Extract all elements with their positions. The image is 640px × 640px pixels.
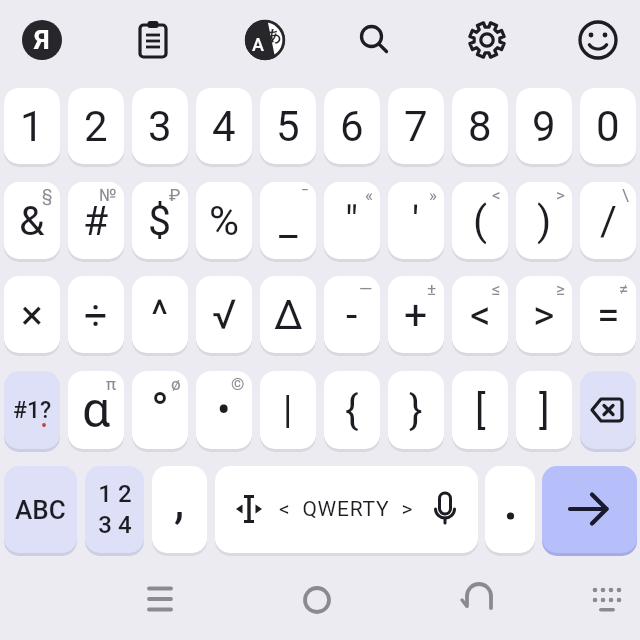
button[interactable] (542, 466, 637, 553)
button[interactable]: ] (516, 371, 572, 449)
button[interactable]: ' (388, 182, 444, 259)
staticText: ÷ (84, 291, 108, 339)
staticText: 6 (340, 102, 364, 151)
button[interactable]: 9 (516, 88, 572, 164)
button[interactable]: { (324, 371, 380, 449)
button[interactable] (125, 12, 181, 68)
staticText: A (252, 34, 264, 55)
staticText: ø (171, 374, 181, 394)
button[interactable]: ) (516, 182, 572, 259)
button[interactable]: A (237, 12, 293, 68)
button[interactable] (580, 371, 636, 449)
staticText: $ (148, 197, 172, 245)
button[interactable]: $ (132, 182, 188, 259)
staticText: Δ (274, 291, 303, 339)
staticText: [ (475, 387, 486, 434)
staticText: = (597, 291, 620, 339)
staticText: - (346, 291, 358, 339)
button[interactable]: 3 (132, 88, 188, 164)
button[interactable]: 1 (4, 88, 60, 164)
staticText: ' (412, 197, 420, 245)
button[interactable]: " (324, 182, 380, 259)
staticText: 8 (468, 102, 492, 151)
staticText: ≥ (556, 279, 565, 299)
staticText: — (359, 279, 373, 299)
staticText: ] (539, 387, 550, 434)
button[interactable]: } (388, 371, 444, 449)
staticText: < QWERTY > (279, 497, 414, 522)
button[interactable]: 1 2 3 4 (85, 466, 144, 553)
button[interactable]: Δ (260, 276, 316, 353)
staticText: > (556, 185, 565, 205)
staticText: < (492, 185, 501, 205)
staticText: ± (427, 279, 437, 299)
staticText: #1? (13, 397, 52, 424)
button[interactable]: ABC (4, 466, 77, 553)
button[interactable] (579, 572, 635, 628)
staticText: 7 (404, 102, 428, 151)
staticText: 5 (276, 102, 300, 151)
button[interactable] (289, 572, 345, 628)
staticText: > (533, 291, 555, 339)
button[interactable]: + (388, 276, 444, 353)
button[interactable]: < QWERTY > (215, 466, 478, 553)
button[interactable]: 4 (196, 88, 252, 164)
staticText: 1 (20, 102, 44, 151)
button[interactable] (459, 12, 515, 68)
staticText: ) (537, 197, 552, 245)
staticText: 4 (212, 102, 236, 151)
button[interactable]: ° (132, 371, 188, 449)
button[interactable]: _ (260, 182, 316, 259)
button[interactable]: # (68, 182, 124, 259)
button[interactable]: - (324, 276, 380, 353)
staticText: « (365, 185, 373, 205)
staticText: ^ (151, 291, 169, 339)
staticText: ₽ (169, 185, 181, 205)
button[interactable]: 5 (260, 88, 316, 164)
button[interactable]: × (4, 276, 60, 353)
button[interactable]: √ (196, 276, 252, 353)
button[interactable]: [ (452, 371, 508, 449)
button[interactable]: • (196, 371, 252, 449)
button[interactable]: 6 (324, 88, 380, 164)
button[interactable] (570, 12, 626, 68)
button[interactable] (485, 466, 535, 553)
button[interactable]: > (516, 276, 572, 353)
staticText: ¯ (301, 185, 309, 205)
button[interactable]: 2 (68, 88, 124, 164)
staticText: ≤ (492, 279, 501, 299)
button[interactable]: , (152, 466, 207, 553)
button[interactable]: α (68, 371, 124, 449)
button[interactable]: = (580, 276, 636, 353)
button[interactable] (132, 571, 188, 627)
staticText: + (404, 291, 428, 339)
button[interactable]: 7 (388, 88, 444, 164)
button[interactable]: #1? (4, 371, 60, 449)
staticText: × (21, 291, 43, 339)
button[interactable]: / (580, 182, 636, 259)
staticText: • (217, 387, 231, 434)
staticText: \ (622, 185, 629, 205)
staticText: 0 (596, 102, 620, 151)
button[interactable]: Я (22, 20, 62, 60)
button[interactable]: 8 (452, 88, 508, 164)
staticText: √ (212, 291, 237, 339)
staticText: < (470, 291, 491, 339)
button[interactable]: ÷ (68, 276, 124, 353)
staticText: 3 (148, 102, 172, 151)
button[interactable]: | (260, 371, 316, 449)
button[interactable]: ^ (132, 276, 188, 353)
button[interactable]: % (196, 182, 252, 259)
button[interactable] (451, 570, 507, 626)
button[interactable]: ( (452, 182, 508, 259)
staticText: , (174, 470, 185, 531)
staticText: # (83, 197, 109, 245)
button[interactable]: 0 (580, 88, 636, 164)
staticText: ≠ (619, 279, 629, 299)
button[interactable]: & (4, 182, 60, 259)
staticText: あ (266, 27, 282, 46)
button[interactable] (347, 12, 403, 68)
button[interactable]: < (452, 276, 508, 353)
staticText: π (106, 374, 117, 394)
staticText: α (82, 381, 111, 440)
